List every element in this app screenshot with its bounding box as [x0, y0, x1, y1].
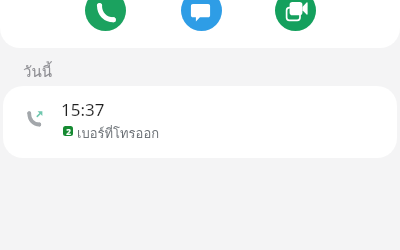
button[interactable]: 15:37 — [3, 86, 397, 158]
button[interactable]: Call — [85, 0, 126, 31]
staticText: เบอร์ที่โทรออก — [77, 123, 160, 144]
staticText: 2 — [66, 126, 71, 136]
button[interactable]: Message — [181, 0, 222, 31]
button[interactable]: Video call — [275, 0, 316, 31]
staticText: 15:37 — [61, 98, 105, 121]
staticText: วันนี้ — [23, 60, 52, 84]
